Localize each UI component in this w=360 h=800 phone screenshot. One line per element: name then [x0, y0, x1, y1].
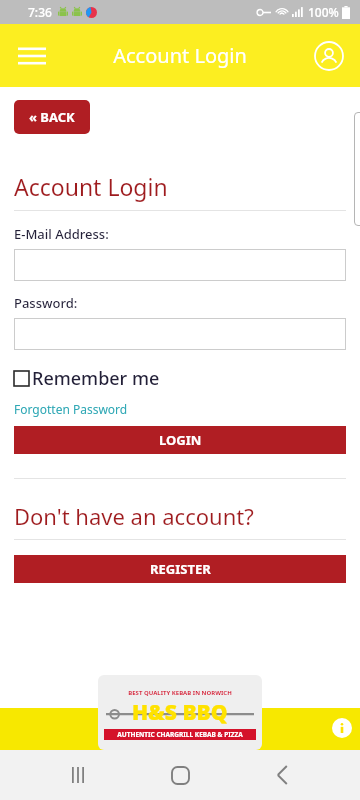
staticText: « BACK [29, 108, 75, 126]
staticText: REGISTER [150, 560, 211, 578]
button[interactable]: Home [156, 751, 204, 799]
button[interactable]: LOGIN [14, 426, 346, 454]
button[interactable]: Account [306, 33, 352, 79]
button[interactable]: Menu [8, 32, 56, 80]
staticText: AUTHENTIC CHARGRILL KEBAB & PIZZA [117, 730, 243, 739]
staticText: Forgotten Password [14, 401, 128, 417]
button[interactable]: Ad info [332, 718, 352, 738]
button[interactable]: « BACK [14, 100, 90, 134]
button[interactable]: BEST QUALITY KEBAB IN NORWICH [98, 675, 262, 750]
staticText: E-Mail Address: [14, 225, 109, 243]
button[interactable] [14, 249, 346, 281]
staticText: H&S BBQ [132, 698, 228, 727]
button[interactable]: REGISTER [14, 555, 346, 583]
button[interactable]: Remember me [14, 366, 160, 391]
staticText: BEST QUALITY KEBAB IN NORWICH [128, 689, 232, 697]
staticText: Password: [14, 294, 78, 312]
button[interactable]: Forgotten Password [14, 401, 128, 417]
button[interactable]: Recents [54, 751, 102, 799]
staticText: LOGIN [159, 431, 202, 449]
staticText: Remember me [32, 366, 160, 391]
staticText: 100% [308, 4, 339, 20]
staticText: Don't have an account? [14, 501, 254, 531]
button[interactable]: Back [258, 751, 306, 799]
staticText: Account Login [14, 171, 168, 202]
staticText: Account Login [113, 42, 247, 69]
staticText: 7:36 [28, 4, 52, 20]
button[interactable] [14, 318, 346, 350]
